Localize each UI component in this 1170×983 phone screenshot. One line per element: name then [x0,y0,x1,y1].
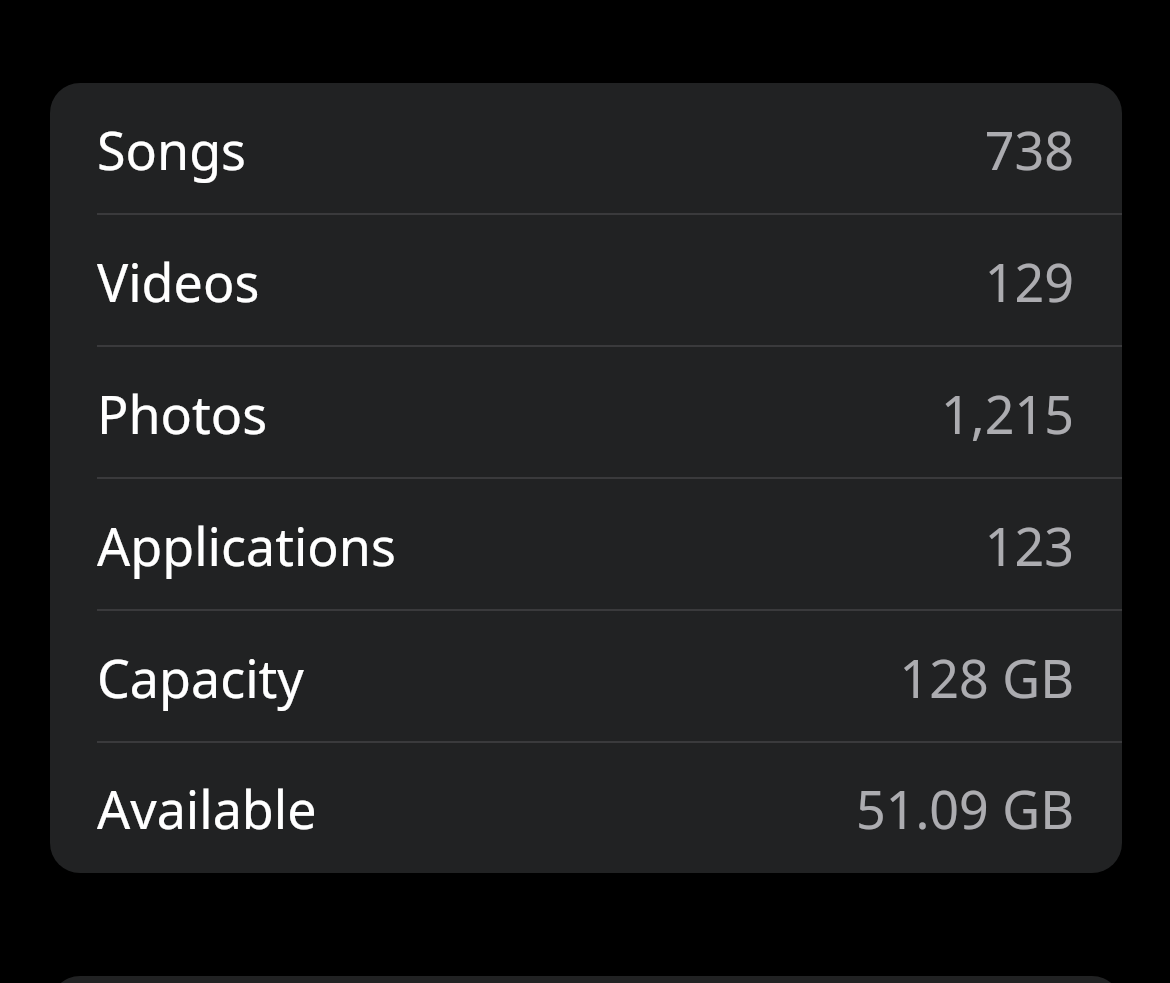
button[interactable]: Applications [50,479,1122,611]
button[interactable]: Capacity [50,611,1122,743]
staticText: 128 GB [899,642,1074,713]
staticText: 51.09 GB [855,773,1074,844]
staticText: 738 [984,114,1074,185]
staticText: Applications [97,510,396,581]
staticText: Available [97,773,317,844]
staticText: Songs [97,114,247,185]
button[interactable]: Videos [50,215,1122,347]
staticText: 129 [984,246,1074,317]
staticText: Capacity [97,642,304,713]
staticText: 123 [984,510,1074,581]
staticText: 1,215 [941,378,1074,449]
button[interactable] [50,976,1122,983]
staticText: Videos [97,246,260,317]
button[interactable]: Songs [50,83,1122,215]
button[interactable]: Available [50,743,1122,873]
button[interactable]: Photos [50,347,1122,479]
staticText: Photos [97,378,268,449]
